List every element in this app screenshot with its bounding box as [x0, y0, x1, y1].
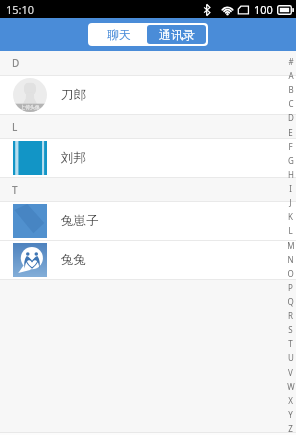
staticText: H	[288, 169, 294, 180]
button[interactable]: O	[285, 268, 296, 279]
button[interactable]: #	[285, 56, 296, 67]
staticText: 刀郎	[61, 87, 86, 103]
staticText: D	[288, 112, 294, 123]
staticText: V	[288, 367, 293, 378]
button[interactable]: M	[285, 240, 296, 251]
staticText: 通讯录	[159, 27, 195, 42]
staticText: 15:10	[6, 2, 35, 17]
staticText: L	[12, 120, 18, 134]
button[interactable]: R	[285, 310, 296, 321]
staticText: O	[287, 268, 294, 279]
staticText: E	[288, 127, 293, 138]
staticText: C	[288, 98, 294, 109]
staticText: L	[288, 225, 293, 236]
staticText: N	[287, 254, 294, 265]
staticText: #	[288, 56, 294, 67]
staticText: W	[287, 381, 295, 392]
button[interactable]: 上传头像	[0, 76, 296, 114]
button[interactable]: 刘邦	[0, 139, 296, 177]
staticText: X	[288, 395, 293, 406]
button[interactable]: C	[285, 98, 296, 109]
button[interactable]: J	[285, 197, 296, 208]
staticText: T	[288, 338, 293, 349]
staticText: J	[289, 197, 292, 208]
staticText: 兔兔	[61, 252, 86, 268]
button[interactable]: 通讯录	[147, 25, 206, 44]
button[interactable]: B	[285, 84, 296, 95]
staticText: Y	[288, 409, 293, 420]
staticText: B	[288, 84, 294, 95]
staticText: S	[288, 324, 293, 335]
staticText: Z	[288, 423, 293, 434]
staticText: M	[287, 240, 295, 251]
button[interactable]: G	[285, 155, 296, 166]
button[interactable]: F	[285, 141, 296, 152]
button[interactable]: 聊天	[90, 25, 147, 44]
staticText: U	[288, 352, 294, 363]
staticText: 聊天	[107, 27, 131, 42]
staticText: R	[288, 310, 293, 321]
button[interactable]: E	[285, 127, 296, 138]
button[interactable]: D	[285, 112, 296, 123]
staticText: K	[288, 211, 293, 222]
staticText: T	[12, 183, 18, 197]
staticText: A	[288, 70, 294, 81]
staticText: 上传头像	[20, 104, 40, 110]
button[interactable]: W	[285, 381, 296, 392]
button[interactable]: 兔崽子	[0, 202, 296, 240]
button[interactable]: P	[285, 282, 296, 293]
staticText: Q	[287, 296, 294, 307]
button[interactable]: V	[285, 367, 296, 378]
staticText: 100	[254, 2, 273, 17]
button[interactable]: Y	[285, 409, 296, 420]
button[interactable]: A	[285, 70, 296, 81]
button[interactable]: S	[285, 324, 296, 335]
staticText: 兔崽子	[61, 213, 99, 229]
button[interactable]: T	[285, 338, 296, 349]
staticText: G	[288, 155, 294, 166]
staticText: I	[289, 183, 292, 194]
button[interactable]: X	[285, 395, 296, 406]
button[interactable]: L	[285, 225, 296, 236]
staticText: D	[12, 56, 20, 70]
button[interactable]: I	[285, 183, 296, 194]
staticText: P	[288, 282, 293, 293]
button[interactable]: U	[285, 352, 296, 363]
button[interactable]: H	[285, 169, 296, 180]
button[interactable]: Z	[285, 423, 296, 434]
staticText: 刘邦	[61, 150, 86, 166]
staticText: F	[288, 141, 293, 152]
button[interactable]: N	[285, 254, 296, 265]
button[interactable]: 兔兔	[0, 241, 296, 279]
button[interactable]: Q	[285, 296, 296, 307]
button[interactable]: K	[285, 211, 296, 222]
